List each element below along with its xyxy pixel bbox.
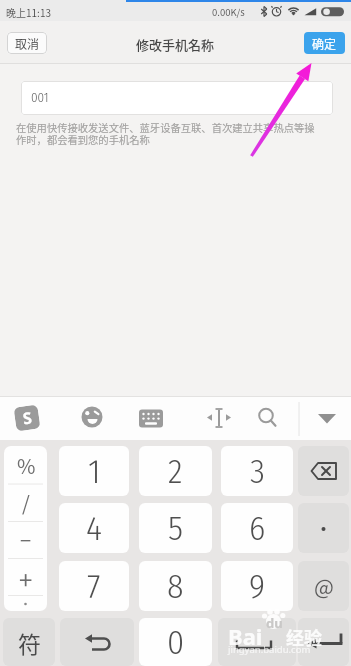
button[interactable] xyxy=(315,405,339,430)
button[interactable]: @ xyxy=(298,561,349,611)
staticText: + xyxy=(19,561,33,591)
staticText: @ xyxy=(314,571,334,601)
button[interactable]: 2 xyxy=(139,446,212,496)
staticText: 取消 xyxy=(15,35,40,52)
button[interactable] xyxy=(298,618,349,666)
staticText: 3 xyxy=(250,451,265,492)
button[interactable]: 7 xyxy=(59,561,129,611)
staticText: 经验 xyxy=(286,624,322,650)
staticText: 修改手机名称 xyxy=(136,35,215,54)
staticText: 在使用快传接收发送文件、蓝牙设备互联、首次建立共享热点等操 作时，都会看到您的手… xyxy=(16,120,315,147)
staticText: jingyan.baidu.com xyxy=(228,643,311,656)
button[interactable]: 确定 xyxy=(304,32,345,54)
staticText: 6 xyxy=(249,508,266,549)
staticText: Bai xyxy=(228,621,263,651)
staticText: % xyxy=(17,451,36,480)
staticText: 7 xyxy=(87,566,101,607)
staticText: du xyxy=(266,614,283,632)
staticText: 符 xyxy=(18,626,41,659)
button[interactable] xyxy=(254,405,279,430)
button[interactable]: 1 xyxy=(59,446,129,496)
button[interactable]: 001 xyxy=(21,81,333,115)
staticText: − xyxy=(20,525,32,554)
button[interactable] xyxy=(80,405,105,430)
staticText: 001 xyxy=(31,90,49,106)
button[interactable]: 取消 xyxy=(7,32,47,54)
staticText: 4 xyxy=(86,508,102,549)
button[interactable]: 3 xyxy=(221,446,293,496)
button[interactable]: S xyxy=(13,404,40,431)
button[interactable]: 4 xyxy=(59,503,129,553)
button[interactable]: % xyxy=(4,446,47,611)
button[interactable] xyxy=(298,446,349,496)
staticText: 0 xyxy=(167,622,185,663)
staticText: 晚上11:13 xyxy=(6,5,51,19)
button[interactable]: 0 xyxy=(139,618,212,666)
staticText: 1 xyxy=(88,451,101,492)
button[interactable]: 6 xyxy=(221,503,293,553)
button[interactable] xyxy=(218,618,296,666)
button[interactable] xyxy=(60,618,134,666)
staticText: 确定 xyxy=(312,35,337,52)
staticText: 5 xyxy=(168,508,183,549)
staticText: 2 xyxy=(168,451,183,492)
button[interactable]: 符 xyxy=(3,618,55,666)
staticText: 0.00K/s xyxy=(212,5,245,19)
staticText: / xyxy=(22,488,30,517)
button[interactable]: 8 xyxy=(139,561,212,611)
staticText: 9 xyxy=(249,566,265,607)
button[interactable] xyxy=(138,405,164,430)
staticText: S xyxy=(21,406,33,429)
staticText: 8 xyxy=(167,566,184,607)
button[interactable] xyxy=(206,405,232,430)
button[interactable]: 5 xyxy=(139,503,212,553)
button[interactable]: 9 xyxy=(221,561,293,611)
button[interactable] xyxy=(298,503,349,553)
